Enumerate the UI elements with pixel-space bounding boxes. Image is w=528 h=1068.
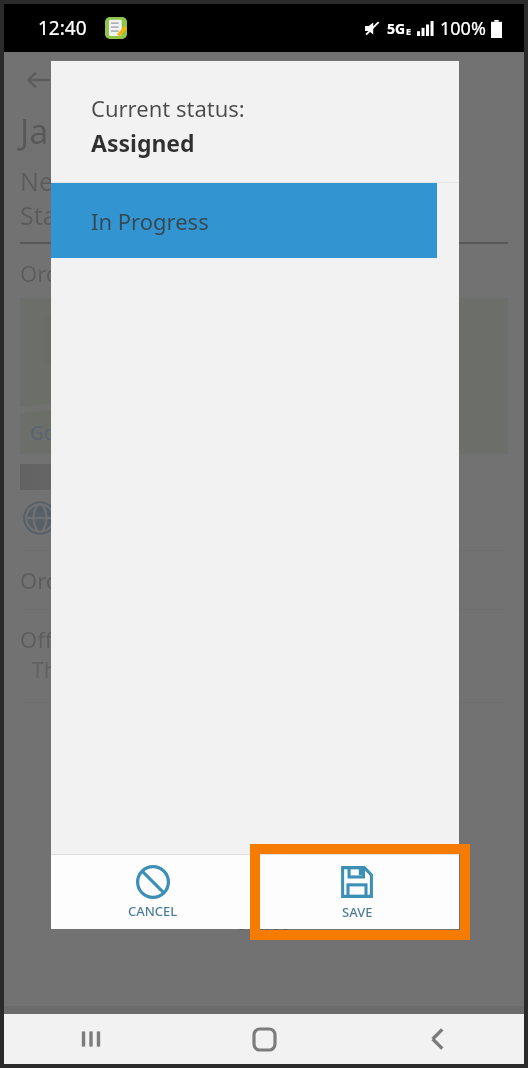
staticText: In Progress — [91, 206, 209, 236]
button[interactable]: SAVE — [255, 855, 459, 929]
staticText: 100% — [440, 16, 486, 41]
button[interactable]: Back — [351, 1014, 524, 1064]
staticText: 12:40 — [38, 15, 87, 41]
button[interactable]: Recent apps — [4, 1014, 178, 1064]
staticText: Sta — [20, 198, 57, 232]
button[interactable]: CANCEL — [51, 855, 255, 929]
staticText: CANCEL — [128, 902, 178, 920]
staticText: Ord — [20, 565, 60, 595]
staticText: Offi — [20, 624, 58, 654]
staticText: SAVE — [342, 903, 373, 921]
staticText: Current status: — [91, 93, 245, 123]
button[interactable]: Home — [178, 1014, 351, 1064]
staticText: Ord — [20, 258, 60, 288]
staticText: STATUS — [238, 914, 291, 934]
staticText: Th — [20, 654, 58, 684]
button[interactable]: In Progress — [51, 183, 437, 258]
staticText: Ne — [20, 164, 54, 198]
staticText: Go — [30, 420, 56, 446]
staticText: E — [406, 25, 412, 37]
staticText: Assigned — [91, 127, 195, 158]
staticText: Ja — [20, 108, 49, 154]
staticText: 5G — [387, 19, 406, 38]
